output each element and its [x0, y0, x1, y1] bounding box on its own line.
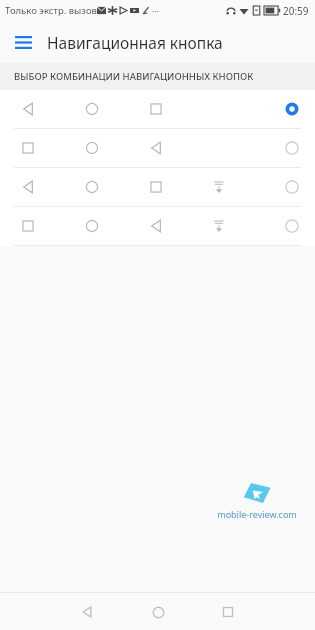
- button[interactable]: [0, 207, 315, 245]
- staticText: Только экстр. вызов: [5, 4, 97, 17]
- staticText: 20:59: [283, 4, 309, 18]
- staticText: Навигационная кнопка: [47, 32, 223, 53]
- button[interactable]: [0, 168, 315, 206]
- button[interactable]: [0, 129, 315, 167]
- staticText: mobile-review.com: [217, 508, 297, 520]
- button[interactable]: Back: [72, 597, 102, 627]
- staticText: ···: [152, 5, 160, 17]
- button[interactable]: Recents: [213, 597, 243, 627]
- staticText: ВЫБОР КОМБИНАЦИИ НАВИГАЦИОННЫХ КНОПОК: [14, 70, 254, 83]
- button[interactable]: [0, 90, 315, 128]
- button[interactable]: Home: [143, 597, 173, 627]
- button[interactable]: Menu: [8, 27, 38, 57]
